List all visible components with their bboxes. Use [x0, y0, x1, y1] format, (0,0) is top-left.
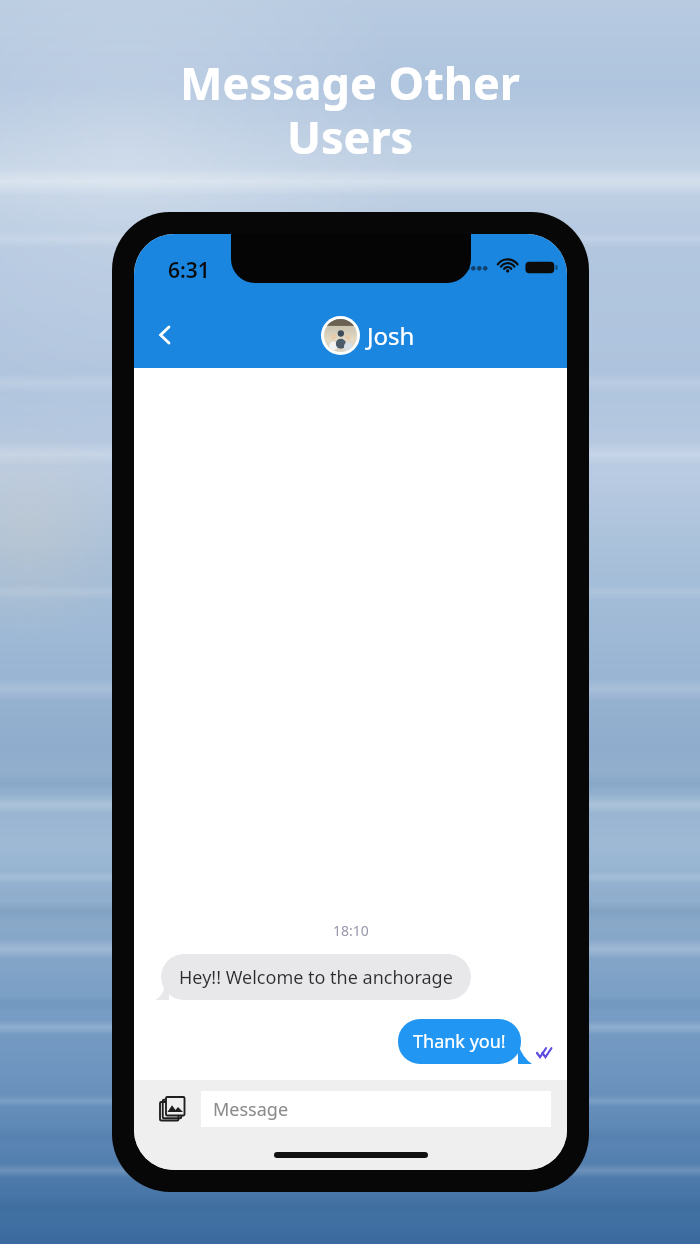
staticText: Message Other Users: [0, 52, 700, 168]
staticText: 6:31: [168, 256, 210, 285]
button[interactable]: Hey!! Welcome to the anchorage: [161, 954, 471, 1000]
button[interactable]: Back: [134, 310, 196, 360]
staticText: 18:10: [333, 921, 369, 940]
staticText: Message: [213, 1097, 289, 1122]
button[interactable]: Attach image: [152, 1089, 192, 1129]
staticText: Thank you!: [413, 1029, 506, 1054]
staticText: Josh: [367, 319, 415, 352]
button[interactable]: Thank you!: [398, 1019, 521, 1064]
button[interactable]: Josh: [321, 316, 415, 355]
button[interactable]: Message: [201, 1091, 551, 1127]
staticText: Hey!! Welcome to the anchorage: [179, 965, 453, 990]
